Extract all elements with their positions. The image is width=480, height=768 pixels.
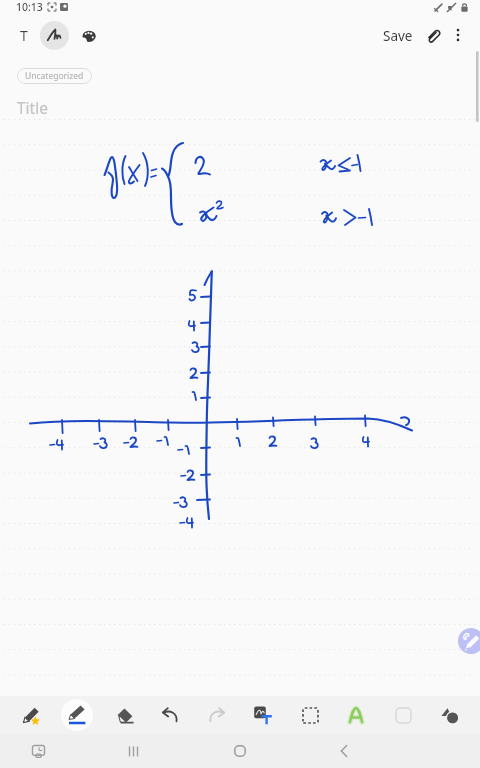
button[interactable]: Convert to text [247,699,279,731]
staticText: T [20,26,28,45]
button[interactable]: More options [444,21,472,49]
staticText: Save [383,27,413,45]
button[interactable]: Attach [418,21,446,49]
button[interactable]: Pen [61,699,93,731]
staticText: Title [17,97,48,118]
button[interactable]: Keyboard [21,734,55,768]
button[interactable]: Eraser [108,699,140,731]
button[interactable]: Assist [458,628,480,654]
button[interactable]: Save [378,24,418,48]
button[interactable]: Redo [201,699,233,731]
button[interactable]: Uncategorized [17,68,92,84]
button[interactable]: Undo [154,699,186,731]
button[interactable]: Highlight text [340,699,372,731]
button[interactable]: Recents [116,734,150,768]
staticText: 10:13 [16,0,43,14]
button[interactable]: Home [223,734,257,768]
staticText: Uncategorized [25,70,84,82]
button[interactable]: Favourite pen [15,699,47,731]
button[interactable]: Handwriting mode [40,21,69,50]
button[interactable]: Back [327,734,361,768]
button[interactable]: Select [294,699,326,731]
button[interactable]: Shapes [433,699,465,731]
button[interactable]: Text mode [9,21,38,50]
button[interactable]: Shape [387,699,419,731]
button[interactable]: Pen settings [74,21,103,50]
